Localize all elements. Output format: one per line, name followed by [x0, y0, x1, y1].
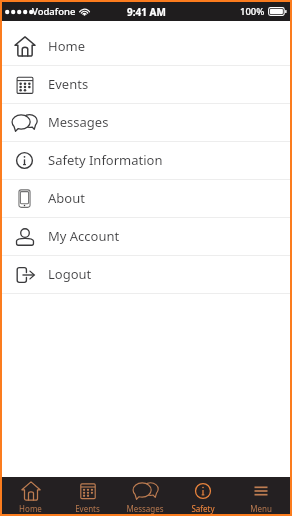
- button[interactable]: Logout: [2, 256, 290, 294]
- staticText: Messages: [126, 503, 164, 514]
- button[interactable]: Safety Information: [2, 142, 290, 180]
- staticText: Events: [75, 503, 100, 514]
- button[interactable]: Home: [2, 28, 290, 66]
- staticText: My Account: [48, 227, 120, 245]
- staticText: Messages: [48, 113, 109, 131]
- button[interactable]: Messages: [2, 104, 290, 142]
- button[interactable]: My Account: [2, 218, 290, 256]
- staticText: 100%: [240, 5, 265, 18]
- staticText: Safety: [191, 503, 215, 514]
- button[interactable]: Menu: [232, 480, 290, 514]
- staticText: About: [48, 189, 85, 207]
- button[interactable]: Safety: [174, 480, 232, 514]
- button[interactable]: Events: [59, 480, 116, 514]
- staticText: Safety Information: [48, 151, 163, 169]
- staticText: Logout: [48, 265, 92, 283]
- staticText: Vodafone: [32, 5, 76, 18]
- staticText: Home: [19, 503, 42, 514]
- staticText: 9:41 AM: [127, 5, 166, 19]
- staticText: Menu: [250, 503, 272, 514]
- button[interactable]: Messages: [116, 480, 174, 514]
- button[interactable]: Home: [2, 480, 59, 514]
- button[interactable]: About: [2, 180, 290, 218]
- button[interactable]: Events: [2, 66, 290, 104]
- staticText: Home: [48, 37, 85, 55]
- staticText: Events: [48, 75, 89, 93]
